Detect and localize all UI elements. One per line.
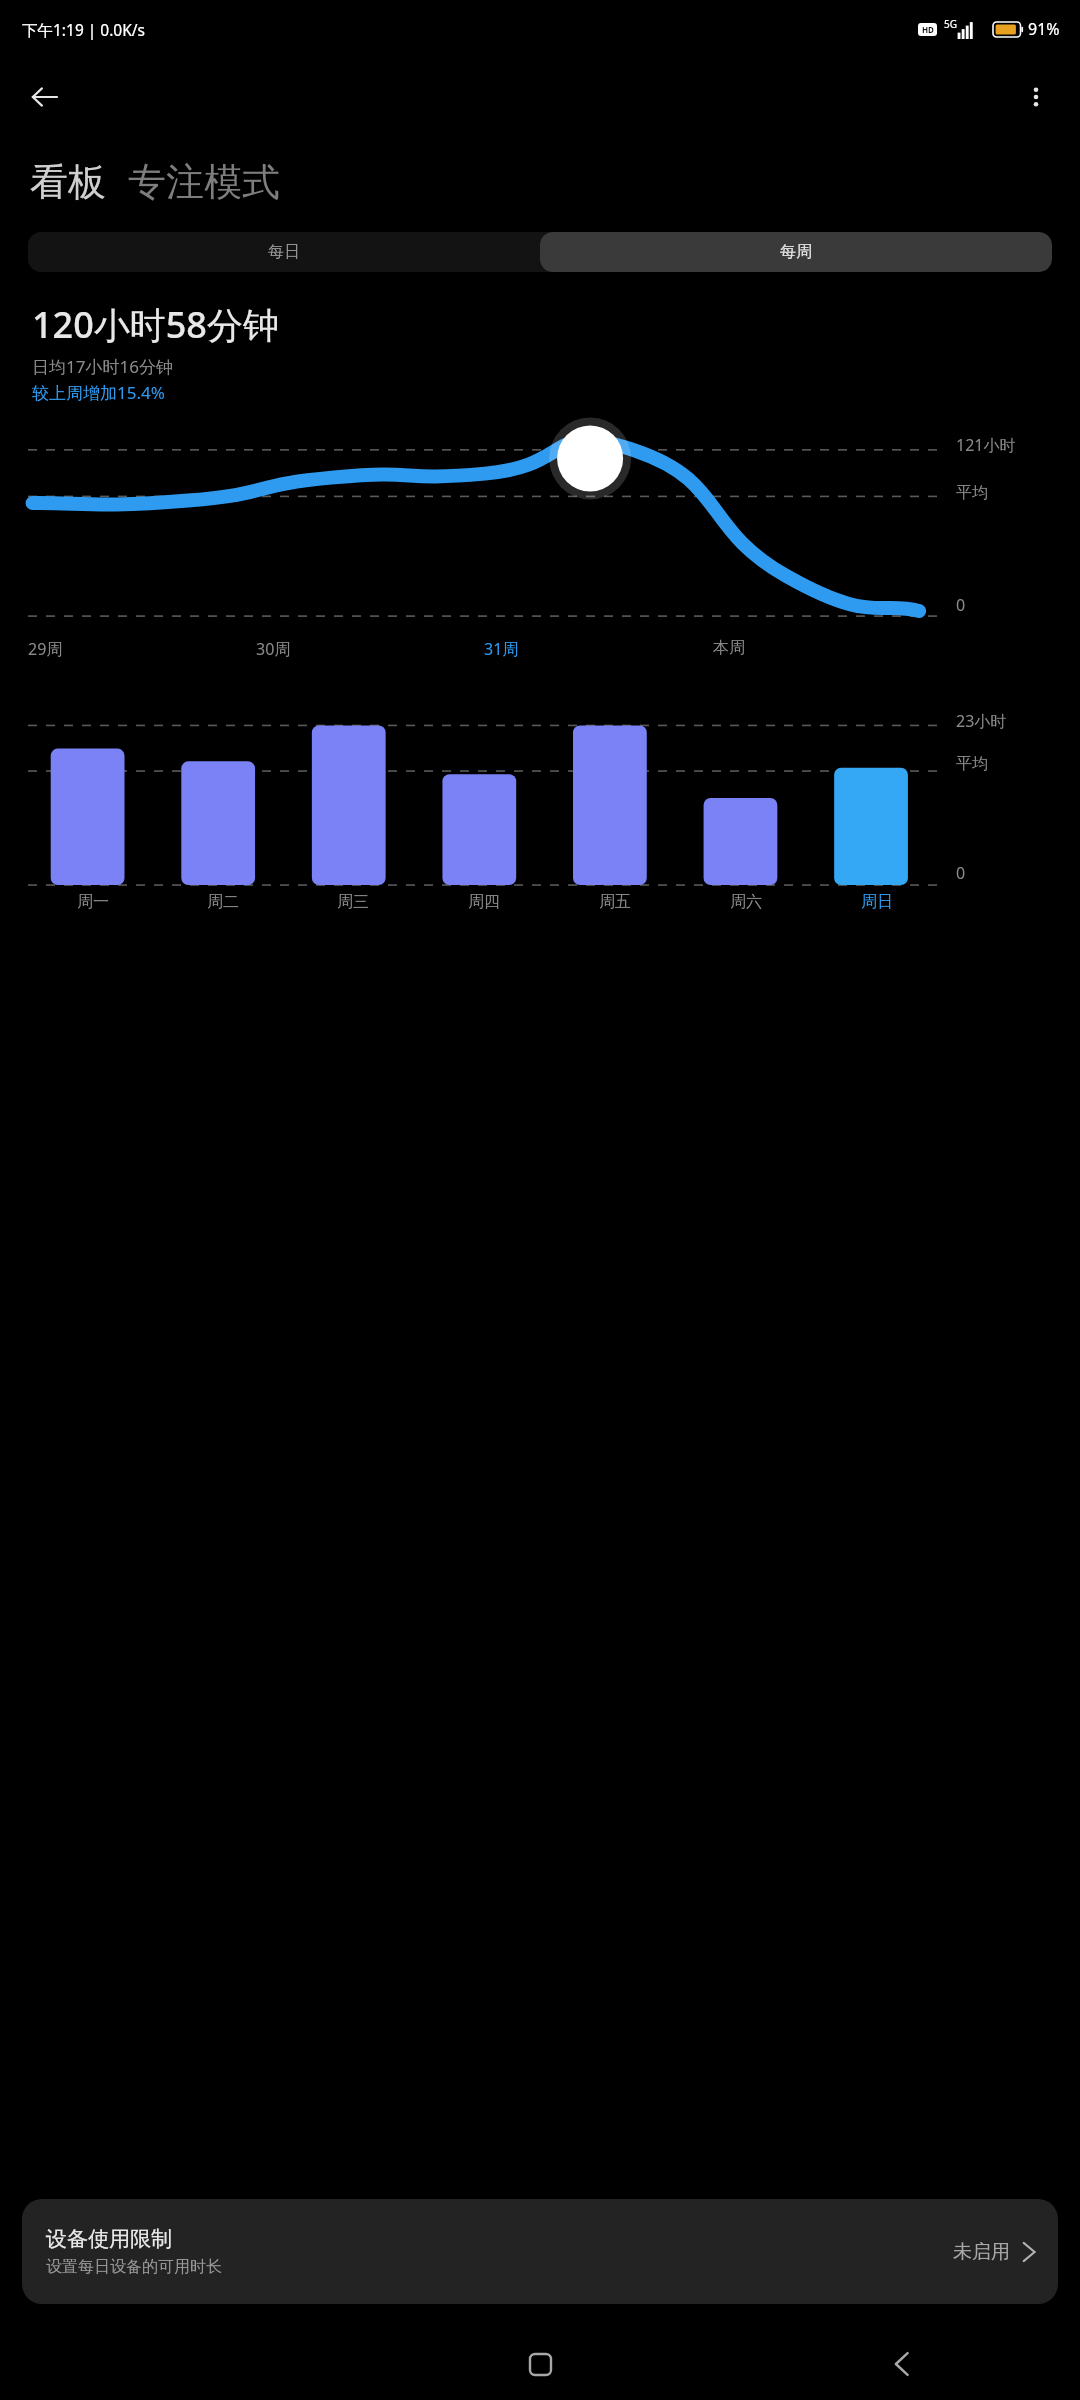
button[interactable]: 每周 (540, 232, 1052, 272)
staticText: 31周 (484, 638, 713, 660)
button[interactable]: Home (512, 2336, 568, 2392)
button[interactable]: More options (1008, 69, 1064, 125)
staticText: 5G (944, 17, 957, 31)
staticText: 周一 (77, 892, 109, 912)
staticText: 121小时 (956, 434, 1016, 456)
staticText: 每日 (268, 242, 300, 262)
staticText: 平均 (956, 483, 988, 503)
staticText: HD (922, 24, 934, 35)
staticText: 看板 (30, 158, 106, 206)
button[interactable]: 每日 (28, 232, 540, 272)
staticText: 周四 (468, 892, 500, 912)
staticText: 设置每日设备的可用时长 (46, 2257, 222, 2277)
staticText: 0 (956, 594, 966, 616)
staticText: 设备使用限制 (46, 2226, 172, 2252)
staticText: 平均 (956, 754, 988, 774)
staticText: 下午1:19 | 0.0K/s (22, 19, 146, 40)
staticText: 未启用 (953, 2240, 1010, 2264)
staticText: 周三 (337, 892, 369, 912)
staticText: 专注模式 (128, 158, 280, 206)
staticText: 23小时 (956, 710, 1007, 732)
staticText: 本周 (713, 638, 942, 658)
staticText: 29周 (28, 638, 256, 660)
button[interactable]: 专注模式 (128, 158, 280, 206)
staticText: 日均17小时16分钟 (32, 355, 173, 378)
staticText: 周六 (730, 892, 762, 912)
staticText: 周五 (599, 892, 631, 912)
staticText: 91% (1028, 18, 1060, 40)
button[interactable]: Back (16, 69, 72, 125)
staticText: 每周 (780, 242, 812, 262)
staticText: 120小时58分钟 (32, 300, 279, 349)
button[interactable]: 看板 (30, 158, 106, 206)
staticText: 0 (956, 862, 966, 884)
staticText: 30周 (256, 638, 484, 660)
staticText: 周二 (207, 892, 239, 912)
button[interactable]: 设备使用限制 (22, 2199, 1058, 2304)
button[interactable]: Back (874, 2336, 930, 2392)
staticText: 较上周增加15.4% (32, 381, 165, 404)
staticText: 周日 (861, 892, 893, 912)
